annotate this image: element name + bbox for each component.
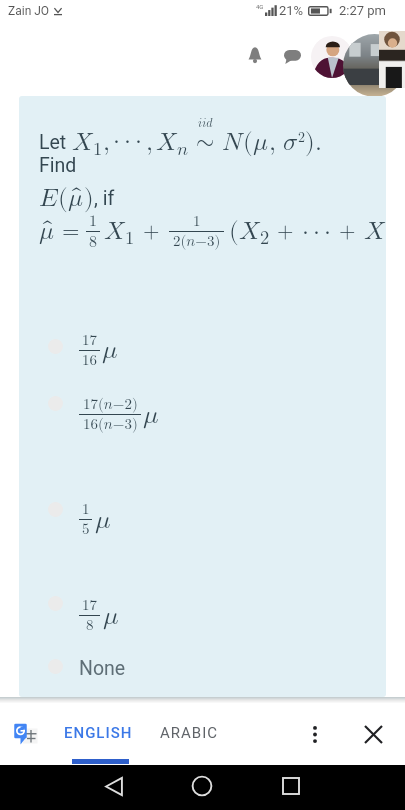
staticText: None bbox=[79, 657, 126, 680]
staticText: 𝜇̂ bbox=[68, 186, 84, 211]
staticText: · bbox=[124, 128, 131, 153]
staticText: Find bbox=[39, 154, 77, 177]
staticText: 1 bbox=[93, 140, 103, 159]
staticText: , if bbox=[94, 187, 115, 210]
staticText: Let bbox=[39, 131, 67, 154]
button[interactable]: Notifications bbox=[240, 40, 270, 70]
staticText: ∼ bbox=[196, 130, 215, 154]
staticText: 𝜇 bbox=[103, 603, 119, 629]
staticText: + bbox=[143, 221, 160, 242]
staticText: 16(𝑛−3) bbox=[83, 417, 138, 432]
staticText: 𝑋 bbox=[239, 219, 260, 244]
button[interactable]: None bbox=[19, 650, 386, 688]
staticText: ARABIC bbox=[160, 724, 219, 742]
button[interactable]: Google Translate bbox=[8, 718, 42, 752]
staticText: · bbox=[313, 219, 320, 244]
button[interactable]: ARABIC bbox=[152, 714, 227, 752]
staticText: , bbox=[103, 130, 110, 155]
staticText: , bbox=[146, 130, 153, 155]
staticText: 8 bbox=[89, 234, 98, 250]
staticText: 2:27 pm bbox=[339, 3, 386, 18]
staticText: 𝐸 bbox=[39, 186, 58, 211]
staticText: 4G bbox=[256, 3, 264, 10]
staticText: 𝑋 bbox=[156, 130, 177, 155]
button[interactable]: Recents bbox=[271, 766, 311, 806]
staticText: 17 bbox=[82, 598, 98, 613]
staticText: , bbox=[269, 130, 276, 155]
button[interactable]: 17 bbox=[19, 587, 386, 629]
button[interactable]: Back bbox=[94, 766, 134, 806]
staticText: · bbox=[302, 219, 309, 244]
staticText: 2 bbox=[298, 131, 305, 145]
button[interactable]: 1 bbox=[19, 493, 386, 533]
staticText: + bbox=[339, 221, 356, 242]
staticText: 𝑋 bbox=[72, 130, 93, 155]
staticText: ( bbox=[243, 130, 253, 155]
staticText: 17(𝑛−2) bbox=[83, 397, 138, 412]
button[interactable]: More options bbox=[296, 715, 334, 753]
staticText: 𝜎 bbox=[283, 130, 298, 155]
staticText: 17 bbox=[82, 333, 98, 348]
staticText: 𝑋 bbox=[104, 219, 125, 244]
staticText: · bbox=[113, 128, 120, 153]
staticText: · bbox=[324, 219, 331, 244]
staticText: ( bbox=[58, 186, 68, 211]
staticText: 𝜇 bbox=[95, 507, 111, 533]
staticText: 𝜇̂ bbox=[39, 219, 55, 244]
staticText: + bbox=[277, 221, 294, 242]
staticText: 𝑖𝑖𝑑 bbox=[198, 117, 213, 129]
button[interactable]: Profile photo bbox=[311, 36, 353, 78]
staticText: . bbox=[315, 130, 322, 155]
button[interactable]: Home bbox=[182, 766, 222, 806]
staticText: = bbox=[62, 220, 80, 243]
button[interactable]: Close bbox=[354, 715, 392, 753]
staticText: ) bbox=[305, 130, 315, 155]
button[interactable]: ENGLISH bbox=[56, 714, 141, 752]
button[interactable]: 17(𝑛−2) bbox=[19, 387, 386, 428]
staticText: 1 bbox=[82, 502, 90, 517]
staticText: ) bbox=[84, 186, 94, 211]
button[interactable]: Story bbox=[343, 34, 405, 97]
staticText: 2(𝑛−3) bbox=[173, 234, 221, 249]
staticText: ENGLISH bbox=[64, 724, 133, 742]
staticText: Zain JO bbox=[8, 4, 50, 18]
staticText: · bbox=[135, 128, 142, 153]
staticText: 1 bbox=[193, 214, 201, 229]
staticText: 1 bbox=[89, 213, 98, 229]
button[interactable]: 17 bbox=[19, 330, 386, 364]
staticText: 𝜇 bbox=[143, 402, 159, 428]
staticText: 21% bbox=[279, 3, 304, 18]
staticText: 2 bbox=[260, 229, 270, 248]
staticText: 𝜇 bbox=[253, 130, 269, 155]
staticText: 𝑋 bbox=[364, 219, 385, 244]
staticText: 𝜇 bbox=[102, 337, 118, 363]
staticText: 16 bbox=[82, 353, 98, 367]
button[interactable]: Messages bbox=[277, 42, 307, 72]
staticText: 𝑁 bbox=[222, 130, 243, 155]
staticText: 1 bbox=[125, 229, 135, 248]
staticText: 5 bbox=[82, 522, 90, 537]
staticText: 𝑛 bbox=[177, 140, 189, 159]
staticText: 8 bbox=[86, 618, 94, 633]
staticText: ( bbox=[229, 219, 239, 244]
